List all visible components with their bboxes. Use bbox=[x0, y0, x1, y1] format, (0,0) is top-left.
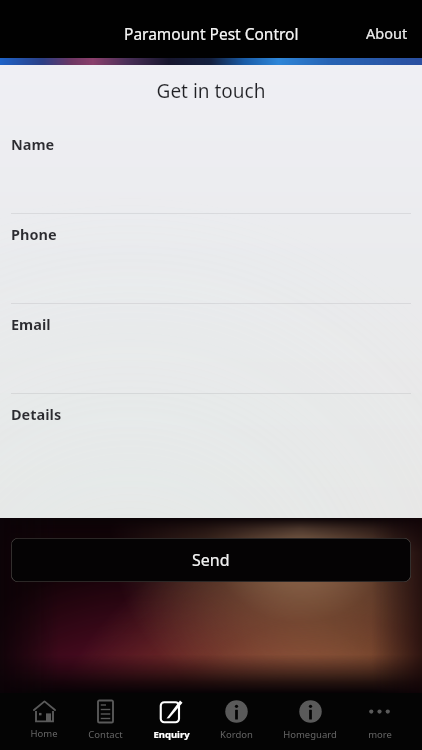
staticText: Email bbox=[11, 314, 51, 334]
button[interactable]: Send bbox=[11, 538, 411, 582]
staticText: Paramount Pest Control bbox=[124, 23, 299, 44]
button[interactable]: Home bbox=[30, 693, 58, 740]
staticText: Details bbox=[11, 404, 62, 424]
staticText: more bbox=[368, 728, 392, 741]
staticText: Send bbox=[192, 549, 230, 571]
staticText: Phone bbox=[11, 224, 57, 244]
staticText: About bbox=[366, 23, 408, 43]
button[interactable]: Phone bbox=[0, 214, 422, 304]
staticText: Enquiry bbox=[153, 728, 190, 741]
staticText: Contact bbox=[88, 728, 123, 741]
staticText: Name bbox=[11, 134, 55, 154]
button[interactable]: About bbox=[352, 15, 422, 51]
button[interactable]: Homeguard bbox=[283, 693, 337, 741]
button[interactable]: Contact bbox=[88, 693, 123, 741]
button[interactable]: Name bbox=[0, 124, 422, 214]
button[interactable]: Details bbox=[0, 394, 422, 518]
staticText: Get in touch bbox=[0, 78, 422, 104]
button[interactable]: Kordon bbox=[220, 693, 253, 741]
button[interactable]: More bbox=[367, 693, 392, 741]
button[interactable]: Email bbox=[0, 304, 422, 394]
staticText: Homeguard bbox=[283, 728, 337, 741]
button[interactable]: Enquiry bbox=[153, 693, 190, 741]
staticText: Kordon bbox=[220, 728, 253, 741]
staticText: Home bbox=[30, 727, 58, 740]
